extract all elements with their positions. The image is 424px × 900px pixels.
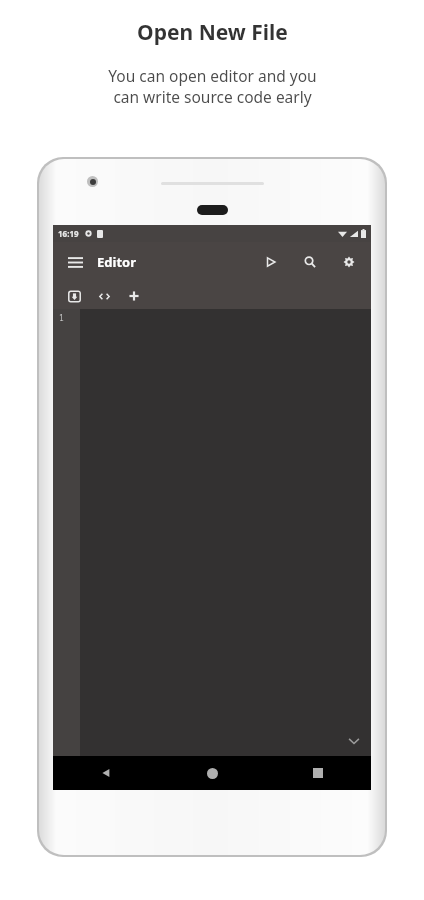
button[interactable]: Menu: [61, 248, 89, 276]
button[interactable]: Collapse: [347, 734, 361, 748]
button[interactable]: Settings: [335, 248, 363, 276]
staticText: Open New File: [137, 18, 288, 47]
button[interactable]: Editor: [97, 253, 136, 271]
staticText: You can open editor and you can write so…: [108, 65, 317, 108]
staticText: 1: [59, 312, 64, 323]
staticText: 16:19: [58, 228, 79, 239]
button[interactable]: Back: [53, 756, 159, 790]
button[interactable]: Code: [93, 285, 115, 307]
button[interactable]: Home: [159, 756, 265, 790]
button[interactable]: Add: [123, 285, 145, 307]
button[interactable]: Save: [63, 285, 85, 307]
button[interactable]: Run: [257, 248, 285, 276]
button[interactable]: Search: [296, 248, 324, 276]
button[interactable]: Recents: [265, 756, 371, 790]
